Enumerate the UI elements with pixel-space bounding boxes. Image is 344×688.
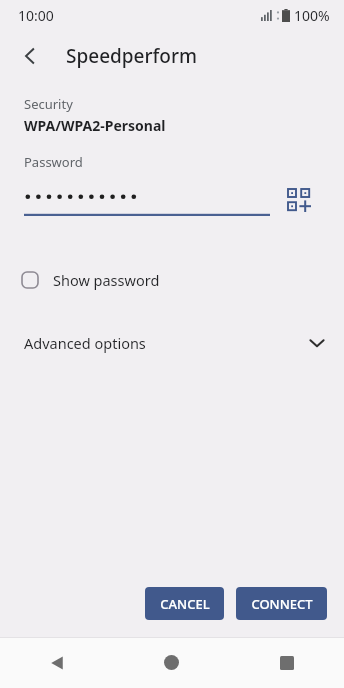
button[interactable]: Back <box>10 36 50 76</box>
staticText: WPA/WPA2-Personal <box>24 116 166 135</box>
staticText: Password <box>24 153 83 171</box>
button[interactable]: CONNECT <box>236 587 327 620</box>
button[interactable] <box>24 184 270 216</box>
staticText: Speedperform <box>66 43 197 69</box>
button[interactable]: Show password <box>0 262 344 298</box>
button[interactable]: Recent apps <box>229 637 344 688</box>
staticText: 100% <box>294 6 330 25</box>
button[interactable]: CANCEL <box>145 587 224 620</box>
button[interactable]: Advanced options <box>0 326 344 360</box>
button[interactable]: Home <box>114 637 229 688</box>
button[interactable]: Back <box>0 637 114 688</box>
staticText: Security <box>24 95 73 113</box>
staticText: CONNECT <box>251 595 313 613</box>
staticText: 10:00 <box>18 6 54 25</box>
staticText: Advanced options <box>24 333 146 353</box>
staticText: Show password <box>53 270 160 290</box>
staticText: CANCEL <box>160 595 210 613</box>
button[interactable]: Scan QR code <box>282 183 316 217</box>
